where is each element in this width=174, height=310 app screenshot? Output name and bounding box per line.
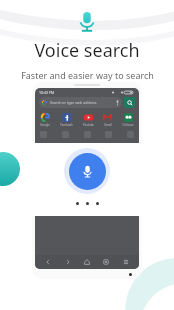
staticText: Google: [40, 123, 50, 127]
button[interactable]: Forward: [62, 256, 74, 268]
button[interactable]: Search: [124, 97, 135, 108]
staticText: Gmail: [104, 123, 112, 127]
button[interactable]: Cricbuzz: [122, 113, 134, 127]
button[interactable]: Search or type web address: [39, 97, 122, 108]
staticText: Facebook: [60, 123, 73, 127]
button[interactable]: Youtube: [83, 113, 94, 127]
staticText: Faster and easier way to search: [21, 69, 154, 81]
button[interactable]: Facebook: [60, 113, 73, 127]
staticText: Youtube: [83, 123, 94, 127]
button[interactable]: Back: [42, 256, 54, 268]
button[interactable]: Google: [40, 113, 50, 127]
staticText: Cricbuzz: [122, 123, 134, 127]
button[interactable]: Gmail: [103, 113, 112, 127]
staticText: Voice search: [34, 38, 140, 63]
staticText: Search or type web address: [50, 100, 97, 105]
button[interactable]: Start voice search: [64, 148, 110, 194]
staticText: 10:43 PM: [39, 90, 55, 95]
button[interactable]: Tabs: [100, 256, 112, 268]
button[interactable]: Home: [81, 256, 93, 268]
button[interactable]: Menu: [120, 256, 132, 268]
